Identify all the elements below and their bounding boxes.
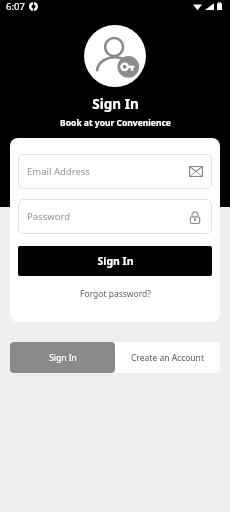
button[interactable]: Password <box>18 199 212 234</box>
button[interactable]: Sign In <box>10 342 115 373</box>
staticText: Book at your Convenience <box>60 117 171 129</box>
staticText: Forgot password? <box>80 288 151 300</box>
button[interactable]: Forgot password? <box>74 286 157 302</box>
button[interactable]: Email Address <box>18 154 212 189</box>
staticText: 6:07 <box>6 0 25 13</box>
button[interactable]: Sign In <box>18 246 212 276</box>
staticText: Sign In <box>97 254 134 268</box>
staticText: Sign In <box>92 95 139 113</box>
button[interactable]: Create an Account <box>115 342 220 373</box>
staticText: Create an Account <box>131 352 204 364</box>
staticText: Password <box>27 210 70 223</box>
staticText: Sign In <box>49 352 77 364</box>
staticText: Email Address <box>27 165 90 178</box>
other: Password <box>187 209 203 225</box>
other: Email <box>188 164 203 179</box>
